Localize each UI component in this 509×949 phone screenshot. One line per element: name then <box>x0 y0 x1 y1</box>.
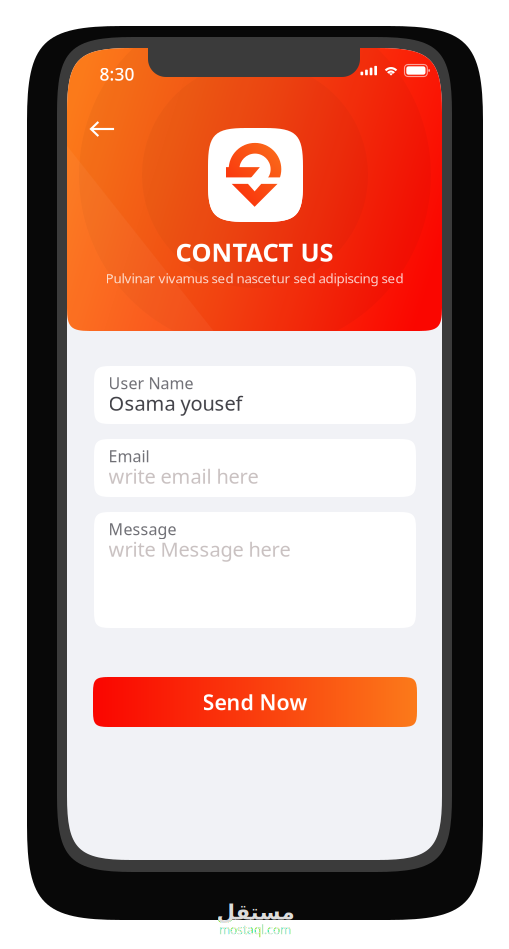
staticText: 8:30 <box>99 62 134 85</box>
staticText: Message <box>108 518 176 540</box>
button[interactable]: Email <box>94 439 416 497</box>
staticText: Pulvinar vivamus sed nascetur sed adipis… <box>105 269 403 287</box>
staticText: Send Now <box>202 688 307 716</box>
button[interactable]: Back <box>80 111 124 147</box>
staticText: mostaql.com <box>219 921 291 937</box>
staticText: CONTACT US <box>175 235 333 269</box>
staticText: User Name <box>108 372 193 394</box>
staticText: Osama yousef <box>108 390 242 416</box>
button[interactable]: User Name <box>94 366 416 424</box>
button[interactable]: Send Now <box>93 677 417 727</box>
staticText: write email here <box>108 463 258 489</box>
button[interactable]: Message <box>94 512 416 628</box>
staticText: write Message here <box>108 536 290 562</box>
staticText: مستقل <box>216 900 294 924</box>
staticText: Email <box>108 445 149 467</box>
